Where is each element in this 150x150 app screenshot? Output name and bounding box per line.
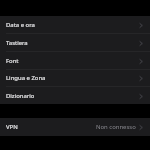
staticText: Tastiera xyxy=(6,39,28,47)
button[interactable]: VPN, Non connesso xyxy=(0,118,150,136)
staticText: VPN xyxy=(6,123,18,131)
button[interactable]: Font xyxy=(0,52,150,70)
staticText: Dizionario xyxy=(6,92,35,100)
staticText: Data e ora xyxy=(6,21,35,29)
staticText: Font xyxy=(6,57,19,65)
button[interactable]: Tastiera xyxy=(0,34,150,52)
button[interactable]: Dizionario xyxy=(0,87,150,105)
button[interactable]: Lingua e Zona xyxy=(0,69,150,87)
staticText: Non connesso xyxy=(96,123,136,131)
button[interactable]: Data e ora xyxy=(0,16,150,34)
staticText: Lingua e Zona xyxy=(6,74,46,82)
